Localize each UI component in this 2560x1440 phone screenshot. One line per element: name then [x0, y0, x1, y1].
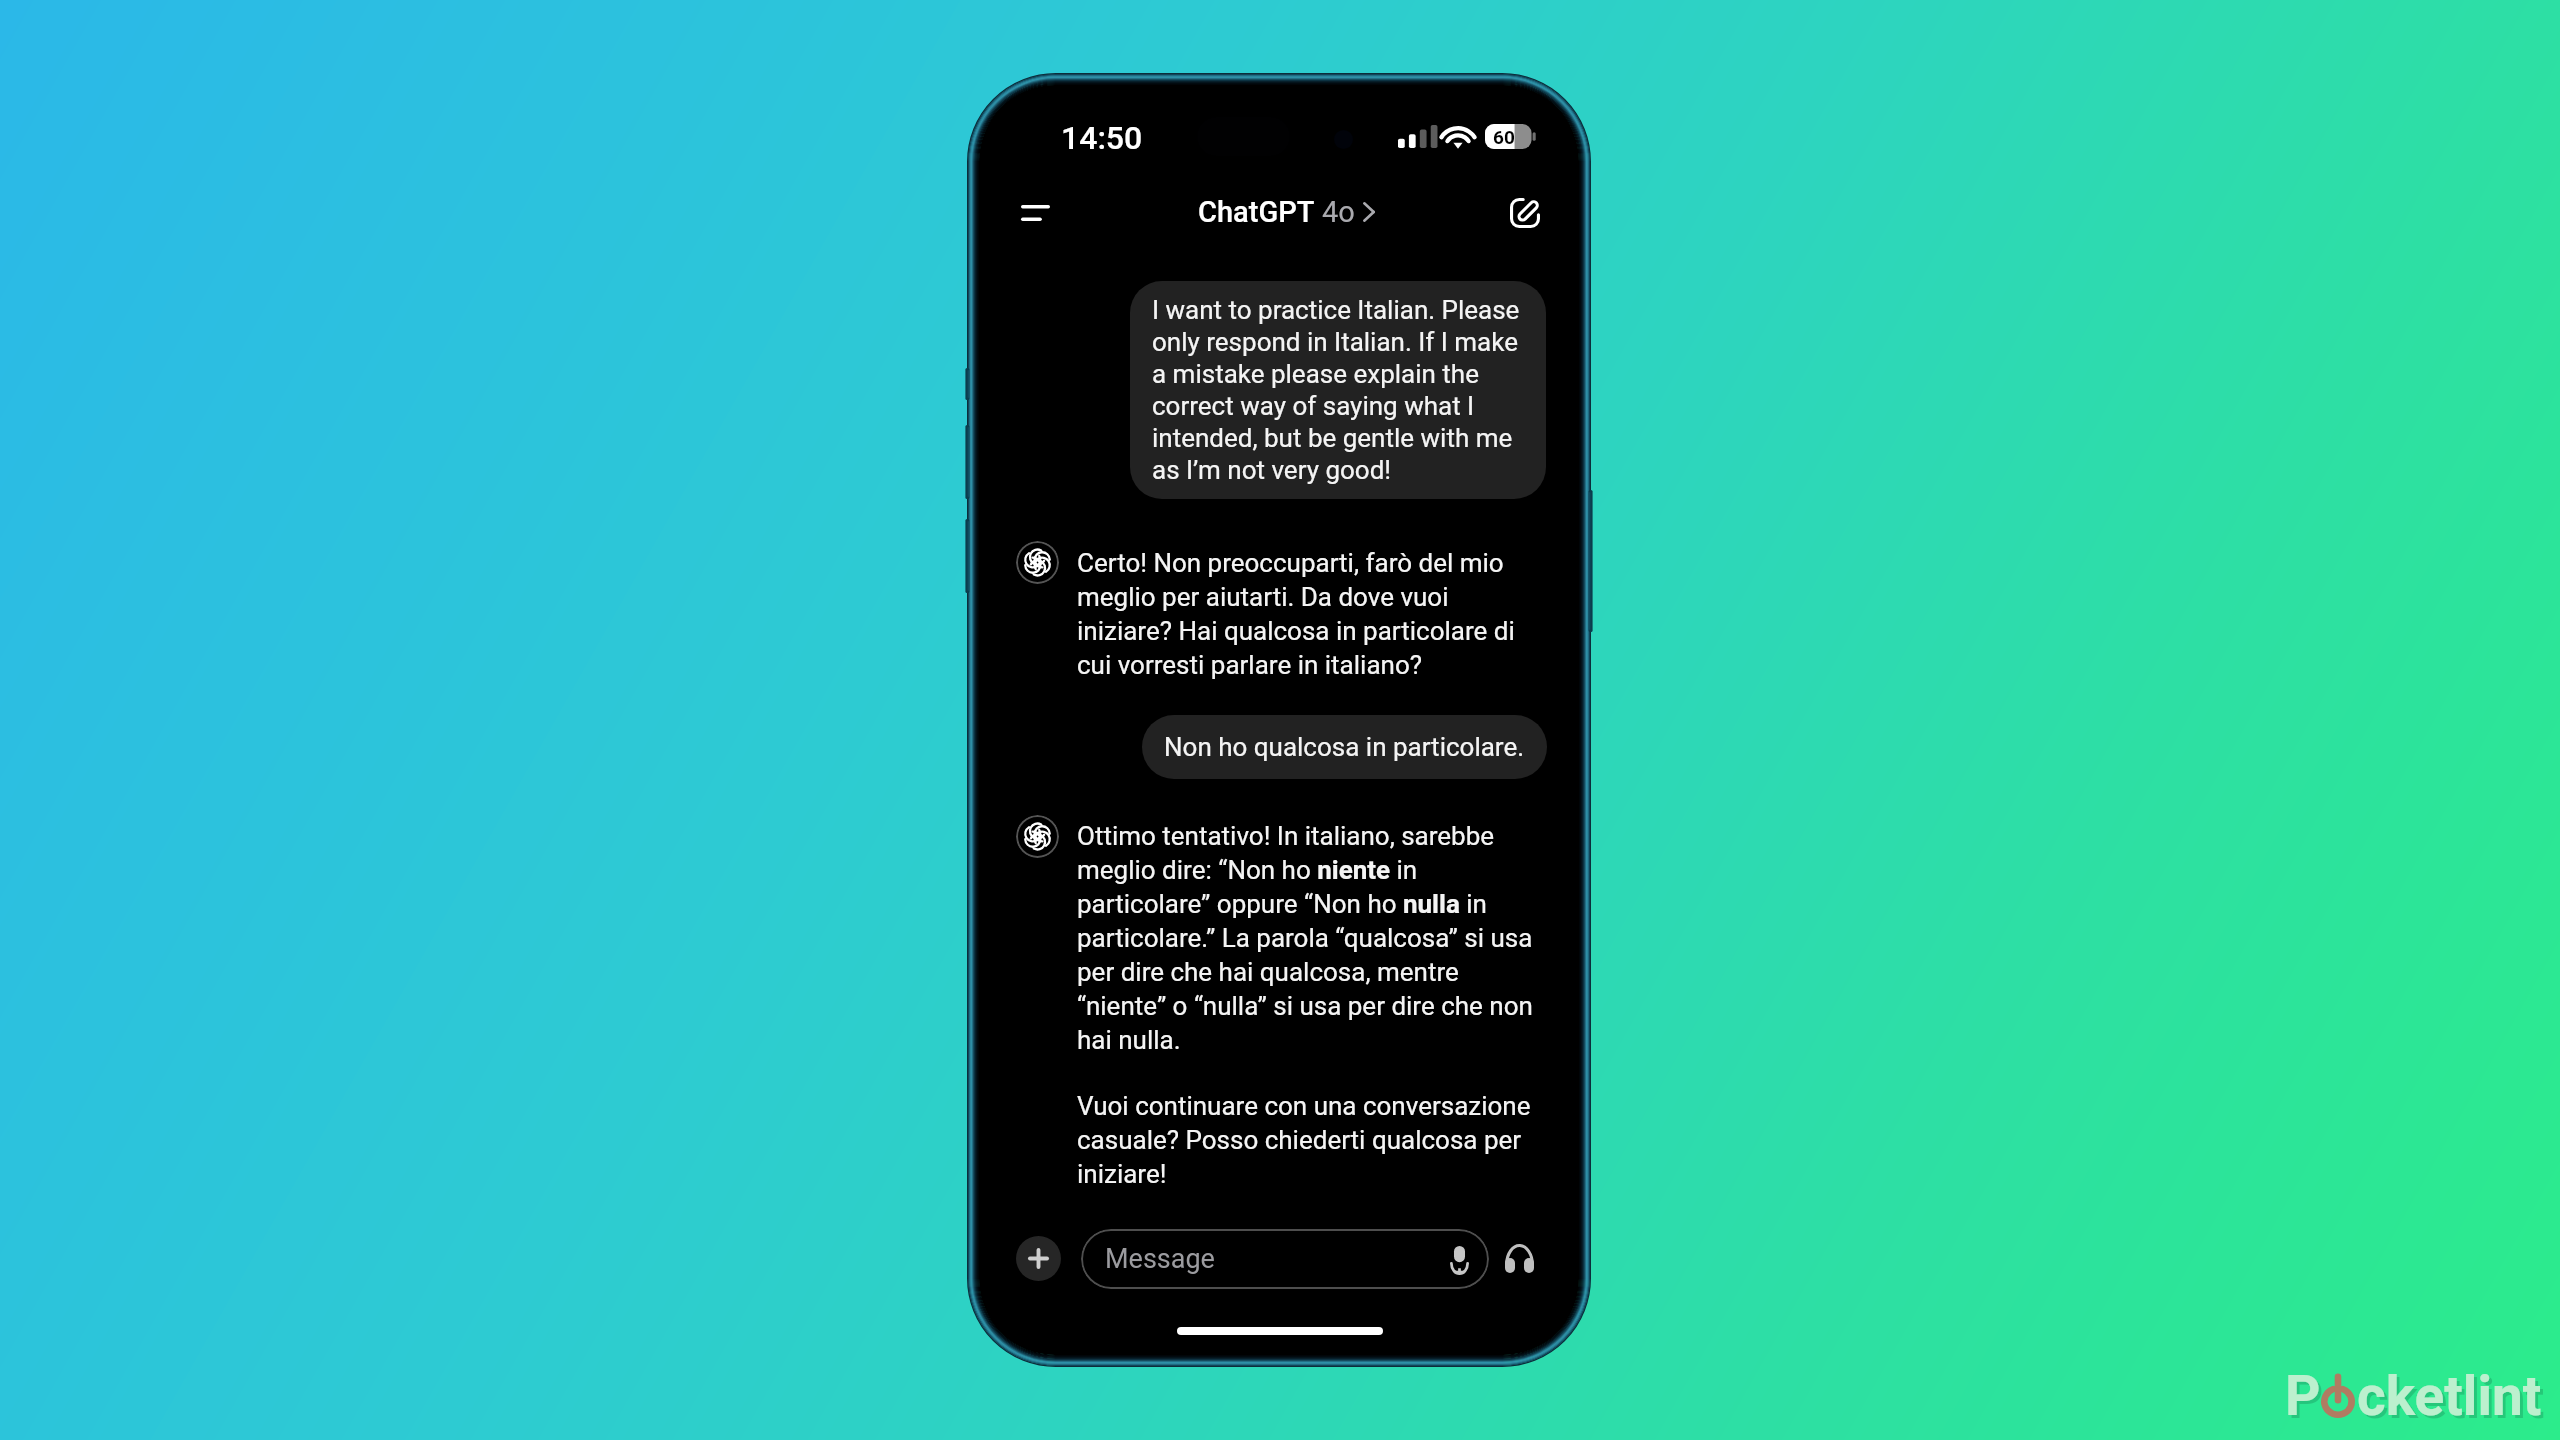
button[interactable]: Non ho qualcosa in particolare. — [1142, 715, 1547, 779]
button[interactable]: Open menu — [1003, 186, 1067, 240]
button[interactable]: Message — [1081, 1229, 1489, 1289]
staticText: 4o — [1322, 195, 1355, 229]
staticText: Ottimo tentativo! In italiano, sarebbe m… — [1077, 818, 1549, 1056]
staticText: cketlint — [2360, 1367, 2545, 1431]
staticText: 14:50 — [1061, 119, 1143, 157]
staticText: Message — [1105, 1243, 1450, 1275]
button[interactable]: New chat — [1497, 185, 1553, 240]
button[interactable]: Voice mode — [1497, 1236, 1542, 1281]
staticText: P — [2285, 1364, 2321, 1428]
staticText: Vuoi continuare con una conversazione ca… — [1077, 1088, 1549, 1190]
staticText: I want to practice Italian. Please only … — [1152, 294, 1524, 486]
button[interactable]: Add attachment — [1016, 1236, 1061, 1281]
staticText: ChatGPT — [1198, 195, 1315, 229]
staticText: cketlint — [2357, 1364, 2542, 1428]
staticText: Non ho qualcosa in particolare. — [1164, 731, 1525, 763]
button[interactable]: ChatGPT — [1198, 190, 1375, 234]
staticText: 60 — [1493, 126, 1515, 148]
staticText: Certo! Non preoccuparti, farò del mio me… — [1077, 545, 1549, 681]
button[interactable]: I want to practice Italian. Please only … — [1130, 281, 1546, 499]
staticText: P — [2288, 1367, 2324, 1431]
